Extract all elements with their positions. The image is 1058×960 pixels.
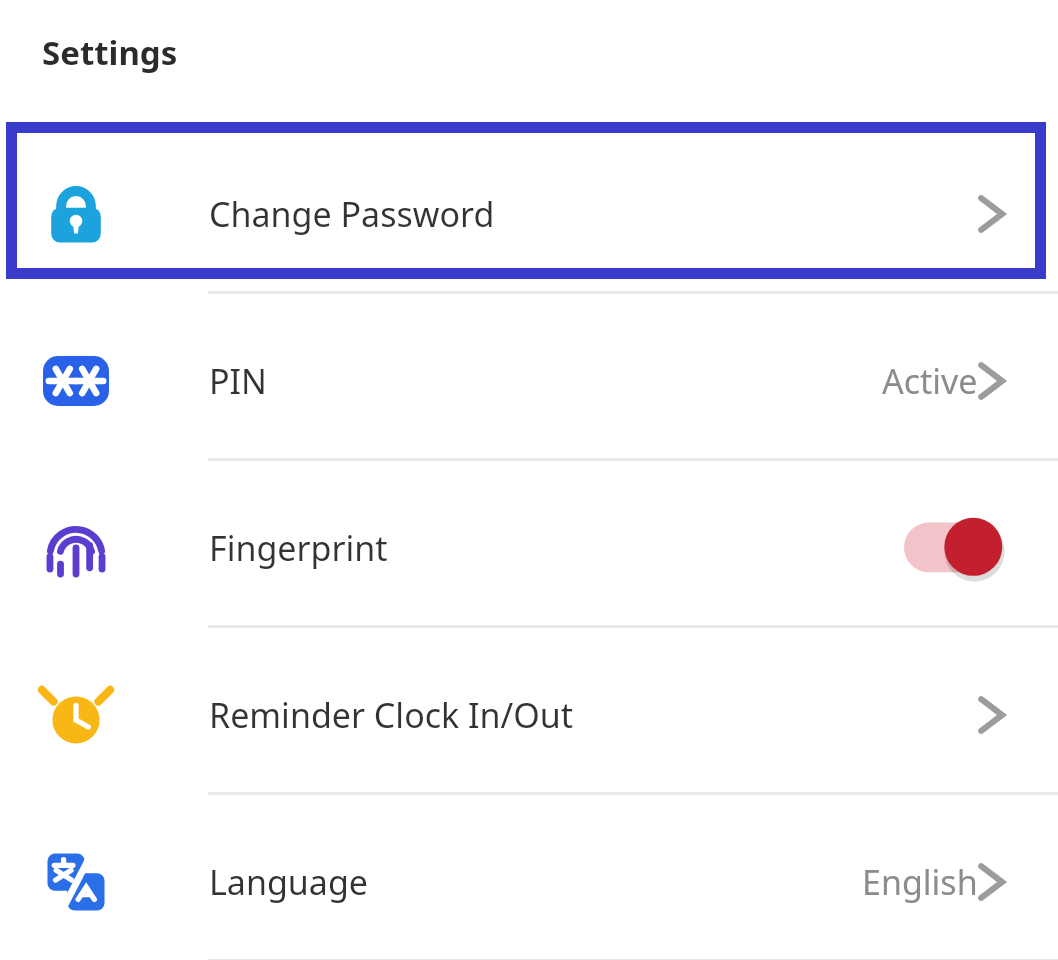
button[interactable]: Reminder Clock In/Out <box>0 631 1058 798</box>
button[interactable]: Change Password <box>0 130 1058 297</box>
staticText: Fingerprint <box>209 525 388 571</box>
button[interactable]: Fingerprint <box>0 464 1058 631</box>
button[interactable]: PIN <box>0 297 1058 464</box>
staticText: Settings <box>42 30 178 75</box>
staticText: Change Password <box>209 191 495 237</box>
staticText: Active <box>882 358 978 404</box>
staticText: Reminder Clock In/Out <box>209 692 574 738</box>
button[interactable]: Fingerprint toggle <box>904 519 1000 577</box>
staticText: English <box>862 859 978 905</box>
staticText: PIN <box>209 358 267 404</box>
staticText: Language <box>209 859 368 905</box>
button[interactable]: Language <box>0 798 1058 960</box>
